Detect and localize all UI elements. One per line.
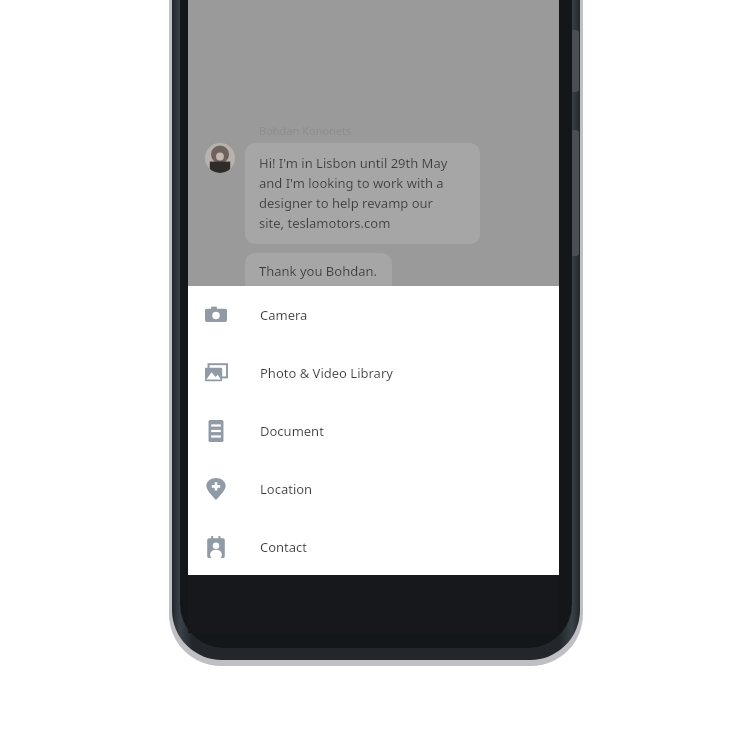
staticText: Location (260, 480, 313, 498)
staticText: Thank you Bohdan. (259, 262, 377, 280)
button[interactable]: Photo & Video Library (188, 344, 559, 402)
staticText: Hi! I'm in Lisbon until 29th May and I'm… (259, 154, 448, 232)
staticText: Photo & Video Library (260, 364, 393, 382)
button[interactable]: Contact (188, 518, 559, 575)
staticText: Contact (260, 538, 308, 556)
button[interactable]: Location (188, 460, 559, 518)
button[interactable]: Document (188, 402, 559, 460)
button[interactable]: Camera (188, 286, 559, 344)
staticText: Camera (260, 306, 308, 324)
staticText: Document (260, 422, 324, 440)
staticText: Bohdan Kononets (259, 123, 352, 138)
